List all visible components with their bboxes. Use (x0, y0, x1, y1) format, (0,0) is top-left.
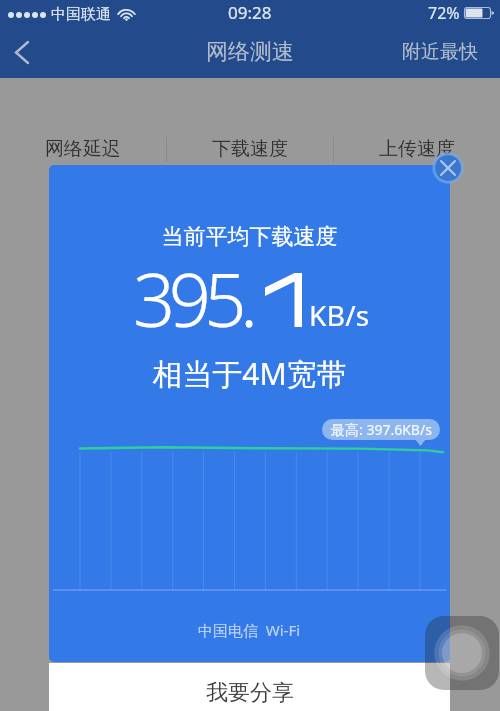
staticText: 我要分享 (206, 679, 294, 707)
staticText: 中国联通 (51, 5, 111, 24)
button[interactable]: Back (0, 30, 44, 74)
staticText: 附近最快 (402, 40, 478, 64)
staticText: 中国电信 Wi-Fi (198, 620, 301, 640)
button[interactable]: 网络延迟 (0, 130, 166, 168)
staticText: 最高: 397.6KB/s (331, 420, 432, 439)
staticText: 网络测速 (206, 38, 294, 66)
staticText: 相当于4M宽带 (49, 353, 450, 394)
staticText: 09:28 (228, 1, 272, 24)
button[interactable]: 我要分享 (49, 663, 450, 711)
button[interactable]: Assistive Touch (425, 616, 499, 690)
button[interactable]: Close (432, 152, 464, 184)
staticText: 当前平均下载速度 (49, 223, 450, 251)
staticText: KB/s (309, 296, 370, 334)
staticText: 上传速度 (379, 137, 455, 161)
staticText: 网络延迟 (45, 137, 121, 161)
staticText: 下载速度 (212, 137, 288, 161)
staticText: 395. (133, 248, 252, 349)
button[interactable]: 下载速度 (167, 130, 333, 168)
button[interactable]: 上传速度 (334, 130, 500, 168)
staticText: 72% (428, 2, 460, 24)
button[interactable]: 附近最快 (402, 40, 478, 64)
